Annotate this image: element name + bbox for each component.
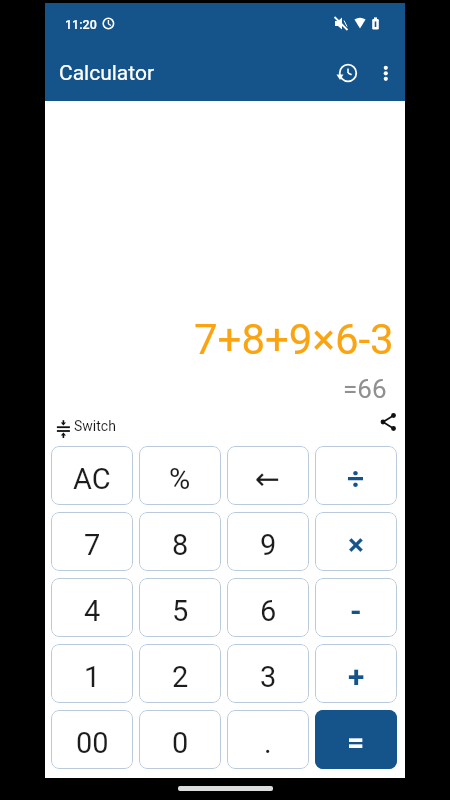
staticText: 8 xyxy=(172,528,189,562)
staticText: Calculator xyxy=(59,61,155,86)
staticText: ← xyxy=(255,461,281,496)
staticText: 2 xyxy=(172,660,189,694)
staticText: 0 xyxy=(172,726,189,760)
button[interactable] xyxy=(377,411,399,433)
button[interactable]: 9 xyxy=(227,512,309,571)
button[interactable]: 7 xyxy=(51,512,133,571)
button[interactable]: 3 xyxy=(227,644,309,703)
button[interactable]: × xyxy=(315,512,397,571)
button[interactable]: + xyxy=(315,644,397,703)
button[interactable] xyxy=(333,59,363,89)
staticText: 11:20 xyxy=(65,17,97,32)
staticText: ÷ xyxy=(347,461,365,496)
staticText: 00 xyxy=(76,726,109,760)
staticText: . xyxy=(264,726,272,760)
staticText: AC xyxy=(73,462,111,496)
staticText: 7 xyxy=(84,528,101,562)
staticText: =66 xyxy=(343,374,387,404)
staticText: 9 xyxy=(260,528,277,562)
button[interactable]: 4 xyxy=(51,578,133,637)
button[interactable] xyxy=(375,59,395,89)
staticText: + xyxy=(348,659,365,694)
button[interactable]: % xyxy=(139,446,221,505)
staticText: - xyxy=(350,593,362,628)
button[interactable]: . xyxy=(227,710,309,769)
button[interactable]: 8 xyxy=(139,512,221,571)
staticText: Switch xyxy=(74,418,116,434)
button[interactable]: Switch xyxy=(53,413,143,439)
button[interactable]: = xyxy=(315,710,397,769)
staticText: 5 xyxy=(172,594,189,628)
button[interactable]: AC xyxy=(51,446,133,505)
staticText: 6 xyxy=(260,594,277,628)
button[interactable]: 00 xyxy=(51,710,133,769)
button[interactable]: 2 xyxy=(139,644,221,703)
button[interactable]: ÷ xyxy=(315,446,397,505)
button[interactable]: 5 xyxy=(139,578,221,637)
staticText: 3 xyxy=(260,660,277,694)
staticText: % xyxy=(169,462,191,496)
button[interactable]: - xyxy=(315,578,397,637)
button[interactable]: 1 xyxy=(51,644,133,703)
button[interactable]: 6 xyxy=(227,578,309,637)
staticText: = xyxy=(347,725,365,760)
button[interactable]: 0 xyxy=(139,710,221,769)
staticText: 4 xyxy=(84,594,101,628)
staticText: 7+8+9×6-3 xyxy=(194,315,394,363)
staticText: × xyxy=(348,527,364,562)
staticText: 1 xyxy=(84,660,101,694)
button[interactable]: ← xyxy=(227,446,309,505)
